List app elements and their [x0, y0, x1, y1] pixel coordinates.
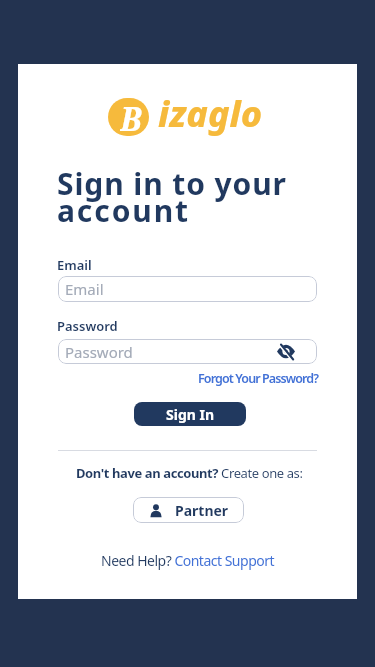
staticText: Email — [65, 279, 104, 299]
staticText: account — [57, 190, 190, 231]
button[interactable]: Password — [58, 339, 317, 364]
staticText: B — [120, 98, 142, 135]
staticText: Password — [57, 317, 118, 335]
button[interactable]: Partner — [133, 497, 244, 523]
staticText: Sign in to your — [57, 163, 287, 204]
staticText: izaglo — [158, 89, 263, 138]
staticText: Email — [57, 256, 92, 274]
button[interactable]: Need Help? Contact Support — [101, 551, 275, 570]
button[interactable] — [277, 345, 295, 358]
staticText: Password — [65, 342, 133, 362]
staticText: Partner — [175, 501, 229, 520]
button[interactable]: Email — [58, 276, 317, 302]
button[interactable]: Sign In — [134, 402, 246, 426]
staticText: Sign In — [166, 405, 215, 424]
staticText: Don't have an account? Create one as: — [76, 464, 303, 482]
button[interactable]: Forgot Your Password? — [198, 370, 319, 387]
